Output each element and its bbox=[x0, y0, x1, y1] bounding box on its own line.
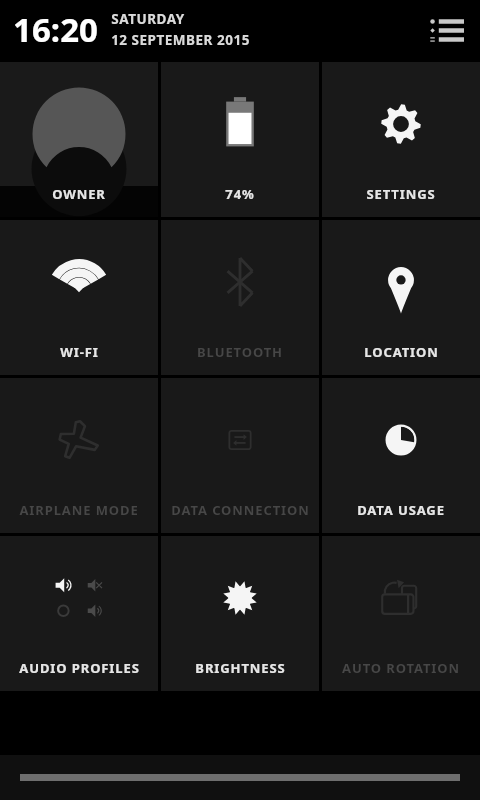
staticText: 16:20 bbox=[13, 7, 98, 52]
staticText: LOCATION bbox=[364, 343, 439, 361]
button[interactable]: Owner profile bbox=[0, 62, 158, 217]
staticText: WI-FI bbox=[60, 343, 99, 361]
button[interactable]: AUTO ROTATION bbox=[322, 536, 480, 691]
staticText: BLUETOOTH bbox=[197, 343, 283, 361]
staticText: BRIGHTNESS bbox=[195, 659, 286, 677]
button[interactable]: WI-FI bbox=[0, 220, 158, 375]
staticText: 12 SEPTEMBER 2015 bbox=[111, 31, 250, 49]
staticText: AUTO ROTATION bbox=[342, 659, 460, 677]
button[interactable]: Battery 74 percent bbox=[161, 62, 319, 217]
staticText: SATURDAY bbox=[111, 10, 185, 28]
button[interactable]: Collapse panel bbox=[0, 755, 480, 800]
staticText: OWNER bbox=[52, 185, 106, 203]
staticText: 74% bbox=[225, 185, 255, 203]
button[interactable]: BRIGHTNESS bbox=[161, 536, 319, 691]
staticText: AUDIO PROFILES bbox=[19, 659, 140, 677]
staticText: DATA USAGE bbox=[357, 501, 445, 519]
button[interactable]: LOCATION bbox=[322, 220, 480, 375]
staticText: SETTINGS bbox=[366, 185, 436, 203]
button[interactable]: BLUETOOTH bbox=[161, 220, 319, 375]
button[interactable]: DATA USAGE bbox=[322, 378, 480, 533]
button[interactable]: Quick settings list bbox=[425, 9, 467, 51]
staticText: DATA CONNECTION bbox=[171, 501, 310, 519]
button[interactable]: AIRPLANE MODE bbox=[0, 378, 158, 533]
button[interactable]: SETTINGS bbox=[322, 62, 480, 217]
button[interactable]: AUDIO PROFILES bbox=[0, 536, 158, 691]
staticText: AIRPLANE MODE bbox=[19, 501, 139, 519]
button[interactable]: DATA CONNECTION bbox=[161, 378, 319, 533]
